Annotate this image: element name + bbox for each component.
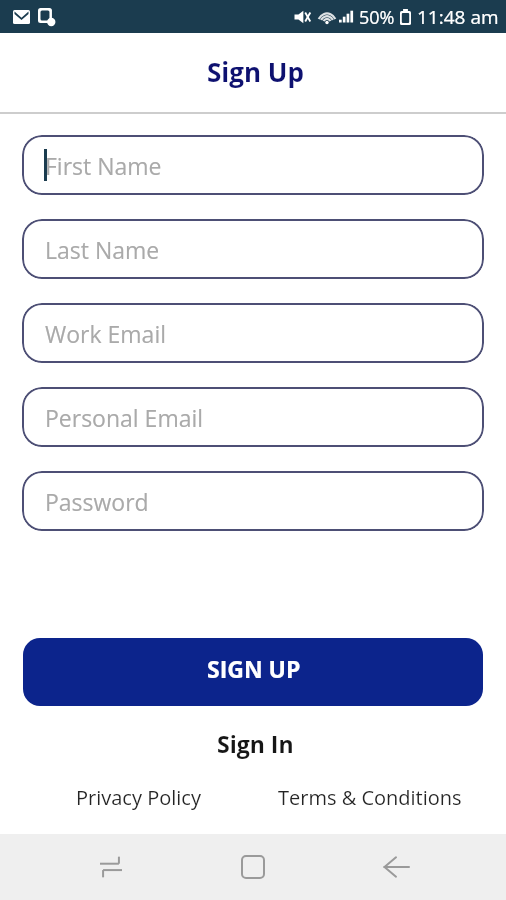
staticText: Personal Email [45,402,204,433]
button[interactable]: Last Name [22,219,484,279]
staticText: 50% [359,5,395,30]
button[interactable]: Work Email [22,303,484,363]
button[interactable]: Home [221,835,285,899]
staticText: Last Name [45,234,160,265]
staticText: Privacy Policy [76,784,201,811]
staticText: Sign In [217,728,294,759]
button[interactable]: Privacy Policy [23,784,254,811]
button[interactable]: Back [364,835,428,899]
staticText: Terms & Conditions [278,784,462,811]
button[interactable]: Terms & Conditions [254,784,486,811]
staticText: Sign Up [207,54,304,89]
button[interactable]: Sign In [0,724,506,762]
button[interactable]: First Name [22,135,484,195]
staticText: First Name [45,150,162,181]
button[interactable]: Recent apps [79,835,143,899]
staticText: Work Email [45,318,166,349]
button[interactable]: SIGN UP [23,638,483,706]
button[interactable]: Password [22,471,484,531]
staticText: Password [45,486,149,517]
staticText: SIGN UP [207,653,301,684]
button[interactable]: Personal Email [22,387,484,447]
staticText: 11:48 am [417,4,499,30]
